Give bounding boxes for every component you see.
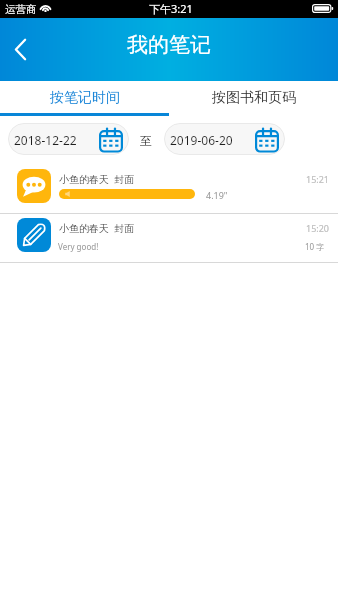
button[interactable]: 小鱼的春天 封面 [0, 158, 338, 213]
staticText: 运营商 [5, 3, 37, 16]
staticText: 2018-12-22 [14, 132, 77, 148]
staticText: Very good! [58, 241, 99, 252]
staticText: 15:21 [306, 173, 330, 185]
staticText: 按图书和页码 [212, 89, 296, 107]
staticText: 小鱼的春天 封面 [59, 221, 135, 235]
button[interactable]: 小鱼的春天 封面 [0, 214, 338, 262]
staticText: 4.19" [206, 189, 228, 201]
button[interactable]: 2018-12-22 [8, 123, 129, 155]
staticText: 小鱼的春天 封面 [59, 172, 135, 186]
button[interactable]: 按笔记时间 [0, 81, 169, 113]
staticText: 至 [140, 133, 152, 148]
button[interactable]: 按图书和页码 [169, 81, 338, 113]
staticText: 按笔记时间 [50, 89, 120, 107]
staticText: 15:20 [306, 222, 330, 234]
staticText: 2019-06-20 [170, 132, 233, 148]
staticText: 10 字 [305, 241, 325, 252]
staticText: 我的笔记 [127, 32, 211, 58]
staticText: 下午3:21 [149, 1, 193, 16]
button[interactable]: 2019-06-20 [164, 123, 285, 155]
button[interactable]: Back [0, 28, 40, 70]
